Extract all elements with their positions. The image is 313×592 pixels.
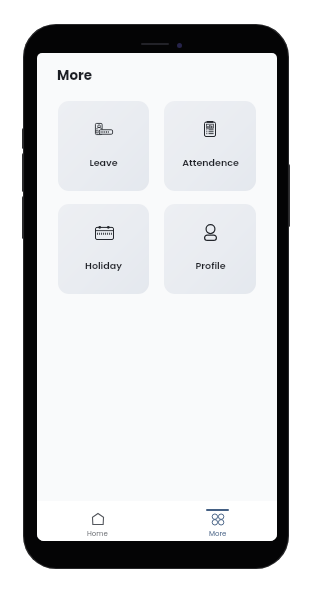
button[interactable]: Attendence	[164, 101, 256, 191]
staticText: Attendence	[182, 156, 239, 169]
button[interactable]: Profile	[164, 204, 256, 294]
staticText: Profile	[195, 259, 226, 272]
button[interactable]: Holiday	[58, 204, 149, 294]
button[interactable]: Home	[37, 501, 157, 541]
button[interactable]: More	[157, 501, 277, 541]
staticText: Holiday	[85, 259, 122, 272]
staticText: Home	[87, 529, 108, 539]
staticText: Leave	[89, 156, 118, 169]
staticText: More	[209, 529, 227, 539]
button[interactable]: Leave	[58, 101, 149, 191]
staticText: More	[57, 66, 93, 85]
